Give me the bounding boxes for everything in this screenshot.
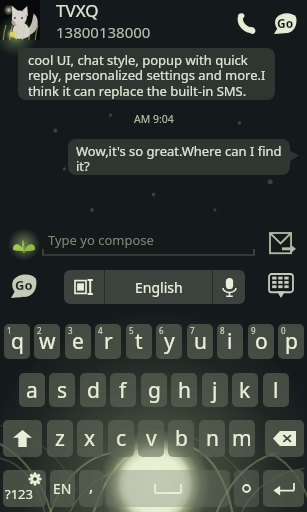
button[interactable]: Period <box>234 470 259 507</box>
button[interactable]: b <box>168 420 194 457</box>
button[interactable]: k <box>232 373 258 407</box>
button[interactable]: Layout <box>64 270 104 304</box>
button[interactable]: Send message <box>266 229 299 257</box>
button[interactable]: y <box>156 324 182 359</box>
staticText: 4 <box>98 325 103 336</box>
staticText: e <box>72 327 84 356</box>
staticText: o <box>255 327 268 356</box>
staticText: Go <box>15 276 33 294</box>
button[interactable]: Call <box>230 7 262 39</box>
staticText: c <box>116 424 127 453</box>
button[interactable]: f <box>110 373 136 407</box>
button[interactable]: q <box>4 324 30 359</box>
button[interactable]: Number pad <box>266 274 296 298</box>
staticText: m <box>232 424 252 453</box>
button[interactable]: Symbols and settings <box>3 470 46 507</box>
staticText: TVXQ <box>56 0 99 22</box>
button[interactable]: p <box>278 324 304 359</box>
button[interactable]: s <box>49 373 75 407</box>
staticText: v <box>146 424 157 453</box>
staticText: 5 <box>129 325 134 336</box>
staticText: 0 <box>281 325 286 336</box>
button[interactable]: w <box>34 324 60 359</box>
staticText: Wow,it's so great.Where can I find it? <box>76 142 284 175</box>
button[interactable]: GO SMS <box>269 7 301 39</box>
staticText: f <box>119 376 127 405</box>
button[interactable]: GO keyboard menu <box>10 273 37 299</box>
staticText: Type yo compose <box>48 231 154 249</box>
staticText: p <box>285 327 298 356</box>
staticText: d <box>87 376 100 405</box>
staticText: j <box>212 376 218 405</box>
staticText: cool UI, chat style, popup with quick re… <box>28 51 269 100</box>
staticText: ?123 <box>5 485 33 503</box>
staticText: 9 <box>251 325 256 336</box>
button[interactable]: h <box>171 373 197 407</box>
button[interactable]: Comma <box>79 470 103 507</box>
button[interactable]: e <box>65 324 91 359</box>
button[interactable]: English <box>105 270 212 304</box>
button[interactable]: o <box>248 324 274 359</box>
button[interactable]: v <box>138 420 164 457</box>
staticText: u <box>194 327 207 356</box>
staticText: 13800138000 <box>56 22 151 39</box>
button[interactable]: c <box>108 420 134 457</box>
button[interactable]: Backspace <box>265 420 304 457</box>
button[interactable]: Wow,it's so great.Where can I find it? <box>68 139 290 175</box>
button[interactable]: Space <box>106 470 230 507</box>
button[interactable]: Enter <box>263 470 304 507</box>
button[interactable]: EN <box>50 470 75 507</box>
staticText: 1 <box>7 325 12 336</box>
staticText: 8 <box>220 325 225 336</box>
button[interactable]: r <box>95 324 121 359</box>
staticText: h <box>178 376 191 405</box>
staticText: AM 9:04 <box>134 112 174 126</box>
staticText: 2 <box>37 325 42 336</box>
button[interactable]: t <box>126 324 152 359</box>
staticText: 6 <box>159 325 164 336</box>
button[interactable]: cool UI, chat style, popup with quick re… <box>18 48 275 100</box>
button[interactable]: a <box>19 373 45 407</box>
button[interactable]: Voice input <box>213 270 245 304</box>
staticText: g <box>148 376 161 405</box>
staticText: y <box>164 327 175 356</box>
button[interactable]: m <box>229 420 255 457</box>
button[interactable]: Contact avatar <box>0 0 40 40</box>
staticText: k <box>239 376 251 405</box>
button[interactable]: u <box>187 324 213 359</box>
staticText: English <box>135 278 183 297</box>
button[interactable]: z <box>47 420 73 457</box>
staticText: r <box>104 327 113 356</box>
staticText: s <box>57 376 68 405</box>
button[interactable]: d <box>80 373 106 407</box>
staticText: 3 <box>68 325 73 336</box>
staticText: n <box>206 424 219 453</box>
staticText: q <box>11 327 24 356</box>
staticText: x <box>84 424 96 453</box>
button[interactable]: Shift <box>3 420 42 457</box>
button[interactable]: x <box>77 420 103 457</box>
staticText: z <box>55 424 65 453</box>
button[interactable]: Type yo compose <box>48 231 154 249</box>
staticText: , <box>89 475 94 497</box>
staticText: l <box>273 376 279 405</box>
staticText: i <box>227 327 233 356</box>
button[interactable]: n <box>199 420 225 457</box>
staticText: Go <box>277 15 294 31</box>
staticText: a <box>26 376 38 405</box>
button[interactable]: g <box>141 373 167 407</box>
staticText: b <box>175 424 188 453</box>
staticText: t <box>135 327 143 356</box>
staticText: w <box>39 327 56 356</box>
staticText: 7 <box>190 325 195 336</box>
button[interactable]: l <box>263 373 289 407</box>
button[interactable]: j <box>202 373 228 407</box>
staticText: EN <box>53 479 72 498</box>
button[interactable]: i <box>217 324 243 359</box>
